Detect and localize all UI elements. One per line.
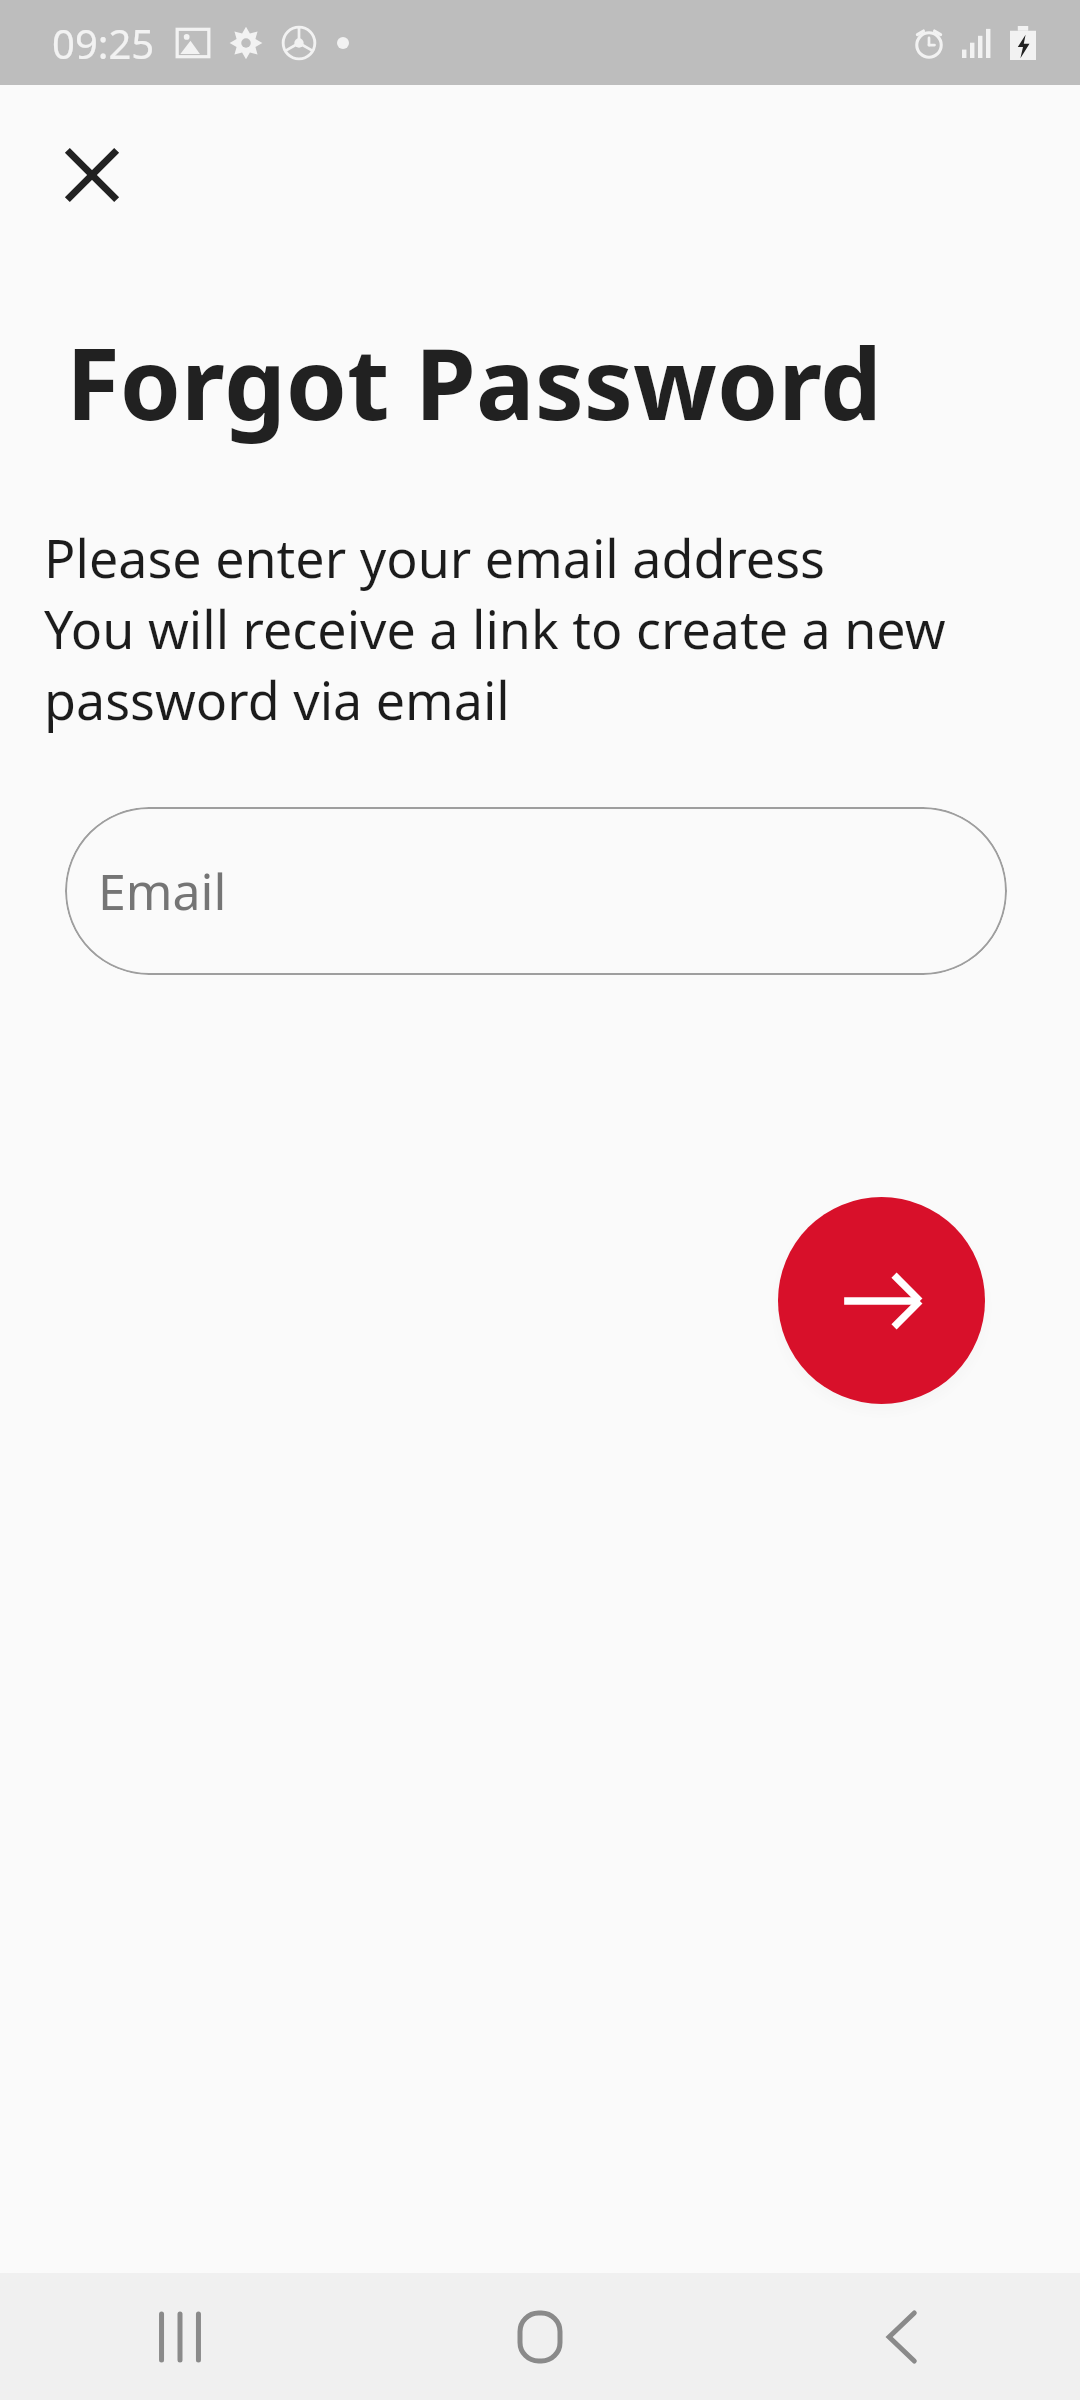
staticText: Please enter your email address You will…: [44, 522, 946, 735]
staticText: Forgot Password: [66, 315, 882, 448]
staticText: Email: [98, 857, 227, 925]
button[interactable]: Email: [65, 807, 1007, 975]
button[interactable]: Close: [44, 127, 140, 223]
button[interactable]: Home: [360, 2273, 720, 2400]
staticText: 09:25: [52, 16, 155, 70]
button[interactable]: Back: [720, 2273, 1080, 2400]
button[interactable]: Submit: [778, 1197, 985, 1404]
button[interactable]: Recent apps: [0, 2273, 360, 2400]
